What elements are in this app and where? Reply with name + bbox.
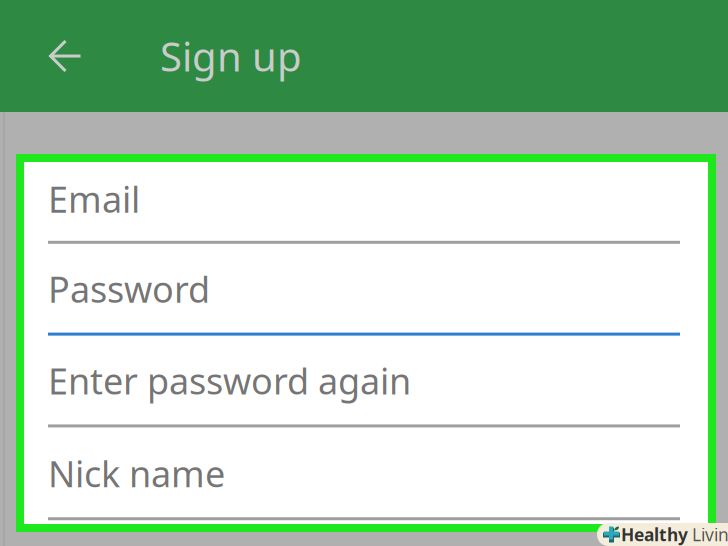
staticText: Email xyxy=(48,175,140,223)
staticText: Enter password again xyxy=(48,357,411,404)
staticText: Living xyxy=(692,523,728,546)
button[interactable]: Nick name xyxy=(48,427,680,520)
button[interactable]: Password xyxy=(48,244,680,336)
staticText: Healthy xyxy=(621,523,688,546)
button[interactable]: Email xyxy=(48,162,680,244)
button[interactable]: Back xyxy=(33,20,98,92)
staticText: Nick name xyxy=(48,449,225,497)
staticText: Password xyxy=(48,265,210,313)
staticText: Sign up xyxy=(160,29,302,82)
button[interactable]: Enter password again xyxy=(48,336,680,427)
